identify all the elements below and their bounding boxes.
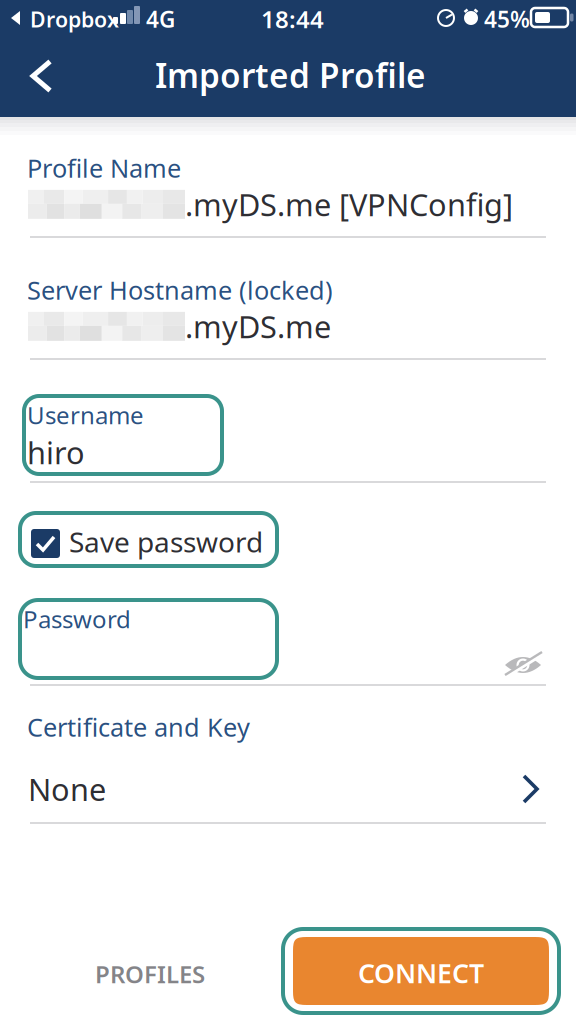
staticText: Password [23,603,131,635]
button[interactable]: Show password [504,653,544,679]
staticText: None [28,769,106,809]
button[interactable]: None [28,767,539,811]
staticText: Profile Name [27,151,181,185]
staticText: 18:44 [261,3,324,35]
staticText: Save password [69,523,263,560]
staticText: Username [27,399,144,431]
button[interactable]: Save password [20,513,277,566]
button[interactable]: CONNECT [283,929,559,1013]
staticText: Server Hostname (locked) [27,273,333,307]
staticText: Dropbox [30,5,119,33]
staticText: .myDS.me [VPNConfig] [185,184,513,225]
staticText: PROFILES [95,958,205,990]
staticText: 45% [484,4,530,34]
staticText: 4G [146,4,175,34]
staticText: CONNECT [358,955,484,991]
staticText: .myDS.me [185,306,331,347]
staticText: Certificate and Key [27,710,250,744]
staticText: hiro [27,432,85,473]
button[interactable]: Back [10,45,72,107]
staticText: Imported Profile [155,53,426,97]
button[interactable]: PROFILES [70,945,230,1003]
